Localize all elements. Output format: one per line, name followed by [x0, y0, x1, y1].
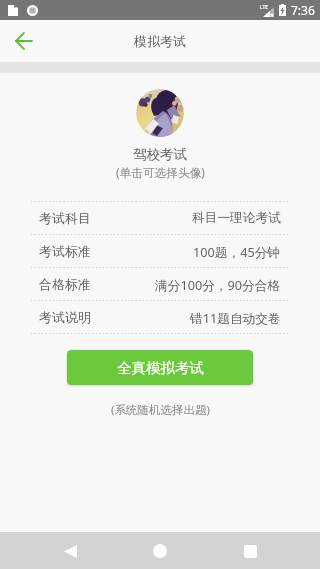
staticText: 错11题自动交卷	[190, 309, 281, 326]
button[interactable]: Recents	[234, 535, 266, 567]
staticText: 考试标准	[39, 243, 91, 259]
button[interactable]: Back	[54, 535, 86, 567]
button[interactable]: 全真模拟考试	[67, 350, 253, 385]
button[interactable]: Back	[8, 25, 40, 57]
staticText: 100题，45分钟	[193, 243, 281, 260]
staticText: 合格标准	[39, 276, 91, 292]
staticText: 全真模拟考试	[117, 359, 204, 377]
staticText: 科目一理论考试	[192, 210, 281, 226]
staticText: 考试科目	[39, 210, 91, 226]
staticText: (系统随机选择出题)	[111, 402, 210, 418]
staticText: (单击可选择头像)	[116, 164, 205, 180]
staticText: 7:36	[291, 2, 315, 18]
staticText: 模拟考试	[134, 33, 186, 49]
button[interactable]: 考试标准	[0, 235, 320, 267]
staticText: LTE	[260, 4, 269, 11]
button[interactable]: 合格标准	[0, 268, 320, 300]
staticText: 驾校考试	[133, 146, 187, 163]
staticText: 满分100分，90分合格	[155, 276, 281, 293]
button[interactable]: 考试说明	[0, 301, 320, 333]
staticText: 考试说明	[39, 309, 91, 325]
button[interactable]: 选择头像	[136, 89, 184, 137]
button[interactable]: Home	[144, 535, 176, 567]
button[interactable]: 考试科目	[0, 202, 320, 234]
